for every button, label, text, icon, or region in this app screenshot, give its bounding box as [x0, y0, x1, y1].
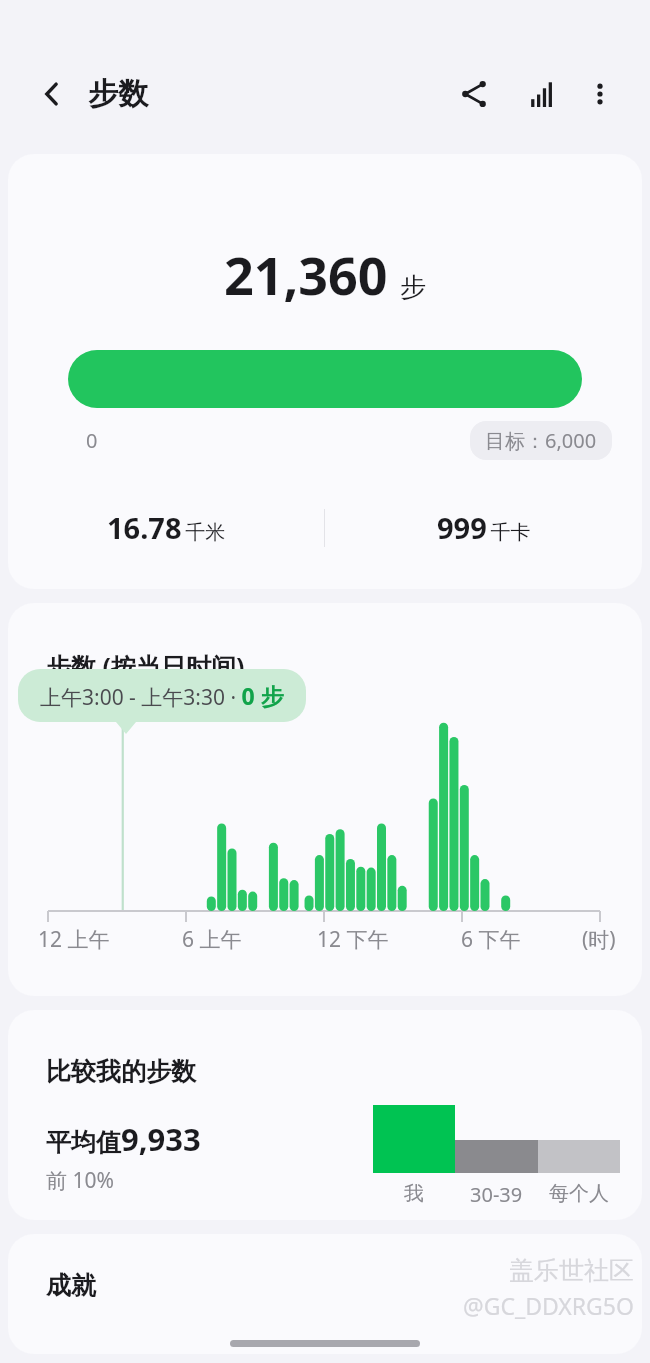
staticText: 12 上午	[38, 925, 110, 954]
button[interactable]: 更多选项	[576, 70, 624, 118]
button[interactable]: 步数 (按当日时间)	[8, 603, 642, 996]
staticText: 步数	[88, 75, 148, 113]
staticText: 上午3:00 - 上午3:30 · 0 步	[40, 680, 284, 711]
staticText: 16.78 千米	[107, 508, 226, 547]
staticText: 每个人	[549, 1181, 609, 1206]
staticText: 0	[86, 427, 98, 454]
button[interactable]: 分享	[450, 70, 498, 118]
staticText: 步	[400, 271, 426, 304]
staticText: 999 千卡	[437, 508, 531, 547]
staticText: 目标：6,000	[485, 427, 597, 454]
staticText: 6 上午	[182, 925, 242, 954]
staticText: 成就	[46, 1270, 96, 1301]
staticText: 步数 (按当日时间)	[46, 649, 245, 683]
button[interactable]: 成就	[8, 1234, 642, 1354]
staticText: 盖乐世社区	[509, 1255, 634, 1286]
staticText: 我	[404, 1181, 424, 1206]
button[interactable]: 比较我的步数	[8, 1010, 642, 1220]
staticText: 21,360	[224, 239, 388, 310]
staticText: 12 下午	[317, 925, 389, 954]
staticText: 前 10%	[46, 1166, 114, 1195]
staticText: (时)	[582, 925, 616, 954]
button[interactable]: 返回	[30, 72, 74, 116]
button[interactable]: 21,360	[8, 154, 642, 589]
staticText: 6 下午	[461, 925, 521, 954]
staticText: 30-39	[470, 1181, 523, 1208]
button[interactable]: 趋势图	[516, 70, 564, 118]
staticText: 比较我的步数	[46, 1056, 196, 1087]
button[interactable]: 目标：6,000	[470, 421, 612, 460]
staticText: 平均值9,933	[46, 1118, 201, 1160]
staticText: @GC_DDXRG5O	[463, 1290, 634, 1321]
